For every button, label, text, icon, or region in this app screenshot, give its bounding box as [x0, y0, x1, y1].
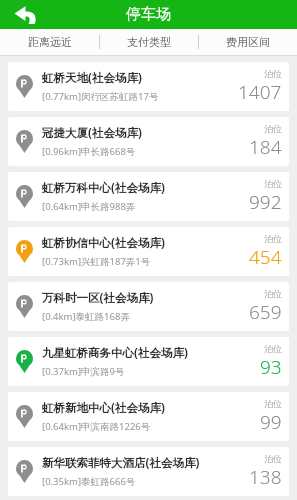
- staticText: 费用区间: [226, 35, 270, 49]
- button[interactable]: 九星虹桥商务中心(社会场库): [8, 337, 289, 386]
- staticText: [0.35km]泰虹路666号: [42, 475, 136, 488]
- staticText: [0.96km]申长路668号: [42, 145, 136, 158]
- button[interactable]: 万科时一区(社会场库): [8, 282, 289, 331]
- staticText: 99: [260, 409, 282, 435]
- staticText: 虹桥协信中心(社会场库): [42, 235, 165, 251]
- staticText: 泊位: [264, 288, 282, 299]
- staticText: 九星虹桥商务中心(社会场库): [42, 345, 188, 361]
- staticText: [0.64km]申滨南路1226号: [42, 420, 151, 433]
- staticText: 138: [249, 464, 282, 490]
- staticText: 泊位: [264, 233, 282, 244]
- button[interactable]: 虹桥协信中心(社会场库): [8, 227, 289, 276]
- button[interactable]: 虹桥万科中心(社会场库): [8, 172, 289, 221]
- button[interactable]: 新华联索菲特大酒店(社会场库): [8, 447, 289, 496]
- staticText: 1407: [238, 79, 282, 105]
- staticText: 泊位: [264, 453, 282, 464]
- button[interactable]: 虹桥新地中心(社会场库): [8, 392, 289, 441]
- staticText: 冠捷大厦(社会场库): [42, 125, 142, 141]
- staticText: 新华联索菲特大酒店(社会场库): [42, 455, 200, 471]
- staticText: 泊位: [264, 123, 282, 134]
- button[interactable]: 冠捷大厦(社会场库): [8, 117, 289, 166]
- staticText: 支付类型: [127, 35, 171, 49]
- staticText: [0.77km]闵行区苏虹路17号: [42, 90, 159, 103]
- staticText: [0.4km]泰虹路168弄: [42, 310, 130, 323]
- staticText: 659: [249, 299, 282, 325]
- staticText: 93: [260, 354, 282, 380]
- staticText: 泊位: [264, 178, 282, 189]
- staticText: 万科时一区(社会场库): [42, 290, 154, 306]
- staticText: [0.64km]申长路988弄: [42, 200, 136, 213]
- button[interactable]: 距离远近: [0, 29, 99, 55]
- button[interactable]: 支付类型: [100, 29, 198, 55]
- button[interactable]: 虹桥天地(社会场库): [8, 62, 289, 111]
- staticText: 虹桥万科中心(社会场库): [42, 180, 165, 196]
- staticText: 泊位: [264, 68, 282, 79]
- staticText: 泊位: [264, 343, 282, 354]
- staticText: 虹桥新地中心(社会场库): [42, 400, 165, 416]
- staticText: [0.73km]兴虹路187弄1号: [42, 255, 151, 268]
- staticText: 184: [249, 134, 282, 160]
- staticText: 距离远近: [28, 35, 72, 49]
- staticText: 停车场: [126, 5, 171, 24]
- staticText: [0.37km]申滨路9号: [42, 365, 125, 378]
- staticText: 992: [249, 189, 282, 215]
- button[interactable]: Back: [0, 0, 54, 29]
- staticText: 虹桥天地(社会场库): [42, 70, 142, 86]
- button[interactable]: 费用区间: [199, 29, 297, 55]
- staticText: 泊位: [264, 398, 282, 409]
- staticText: 454: [249, 244, 282, 270]
